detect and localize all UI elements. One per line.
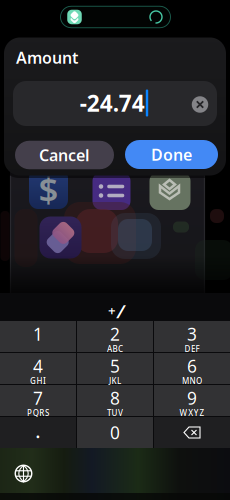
button[interactable]: 4 xyxy=(0,353,76,384)
button[interactable]: Decimal point xyxy=(0,417,76,448)
button[interactable]: 6 xyxy=(154,353,230,384)
staticText: 1 xyxy=(33,322,43,345)
button[interactable]: 1 xyxy=(0,321,76,352)
button[interactable]: 2 xyxy=(77,321,153,352)
staticText: PQRS xyxy=(27,408,49,418)
staticText: 9 xyxy=(187,386,197,409)
staticText: / xyxy=(117,299,124,323)
staticText: + xyxy=(108,301,116,319)
staticText xyxy=(37,344,39,354)
staticText: JKL xyxy=(109,376,121,386)
staticText: 2 xyxy=(110,322,120,345)
staticText: -24.74 xyxy=(80,88,145,118)
staticText: Cancel xyxy=(39,144,90,166)
staticText: $ xyxy=(38,166,58,212)
button[interactable]: Delete xyxy=(154,417,230,448)
staticText: 3 xyxy=(187,322,197,345)
button[interactable]: Toggle sign xyxy=(96,302,136,320)
button[interactable]: 8 xyxy=(77,385,153,416)
staticText: 6 xyxy=(187,354,197,377)
button[interactable]: Stop automation xyxy=(149,10,163,24)
staticText: . xyxy=(35,420,40,443)
button[interactable]: 0 xyxy=(77,417,153,448)
button[interactable]: Done xyxy=(125,140,218,169)
staticText: DEF xyxy=(184,344,200,354)
staticText: WXYZ xyxy=(180,408,204,418)
button[interactable]: 3 xyxy=(154,321,230,352)
staticText: TUV xyxy=(107,408,123,418)
button[interactable]: Next keyboard xyxy=(13,463,33,483)
button[interactable]: 9 xyxy=(154,385,230,416)
button[interactable]: 7 xyxy=(0,385,76,416)
button[interactable]: Clear text xyxy=(192,96,208,113)
staticText: Done xyxy=(151,144,192,165)
staticText: 0 xyxy=(110,421,120,444)
staticText: 8 xyxy=(110,386,120,409)
staticText: 5 xyxy=(110,354,120,377)
staticText: 4 xyxy=(33,354,43,377)
staticText: 7 xyxy=(33,386,43,409)
staticText: Amount xyxy=(16,47,78,68)
staticText: MNO xyxy=(182,376,202,386)
staticText: GHI xyxy=(30,376,46,386)
button[interactable]: 5 xyxy=(77,353,153,384)
staticText: ABC xyxy=(107,344,123,354)
button[interactable]: Cancel xyxy=(15,141,114,169)
